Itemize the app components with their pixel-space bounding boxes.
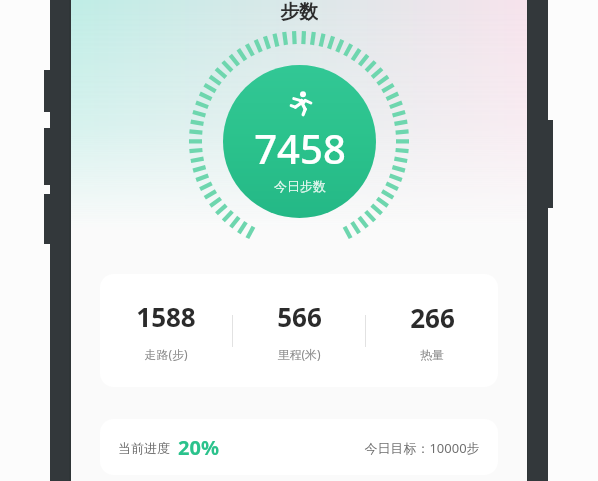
button[interactable]: 当前进度 [100, 419, 498, 475]
staticText: 今日目标：10000步 [364, 439, 480, 457]
staticText: 当前进度 [118, 440, 170, 456]
staticText: 热量 [420, 347, 444, 362]
button[interactable]: 今日步数 7458 [223, 65, 376, 218]
staticText: 里程(米) [277, 346, 321, 362]
button[interactable]: 1588 [100, 274, 498, 387]
staticText: 566 [277, 299, 322, 334]
staticText: 1588 [136, 299, 196, 334]
staticText: 走路(步) [144, 346, 188, 362]
staticText: 20% [178, 434, 219, 461]
staticText: 步数 [280, 0, 318, 22]
staticText: 7458 [254, 121, 346, 175]
staticText: 今日步数 [274, 178, 326, 194]
staticText: 266 [410, 300, 455, 335]
